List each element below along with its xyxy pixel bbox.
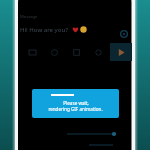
button[interactable]: Emoji — [120, 30, 128, 38]
staticText: Message — [20, 14, 38, 20]
button[interactable]: Tool 3 — [92, 46, 105, 59]
staticText: rendering GIF animation. — [48, 106, 103, 112]
button[interactable]: Tool 1 — [48, 46, 61, 59]
button[interactable]: Slider — [61, 129, 120, 139]
button[interactable]: Tool 2 — [70, 46, 83, 59]
button[interactable]: Play preview — [110, 43, 132, 61]
staticText: Hi! How are you? — [20, 25, 68, 33]
button[interactable]: Tool 0 — [26, 46, 39, 59]
staticText: Please wait, — [63, 100, 89, 106]
button[interactable]: Please wait, — [32, 89, 119, 118]
button[interactable]: Slider — [83, 140, 119, 150]
